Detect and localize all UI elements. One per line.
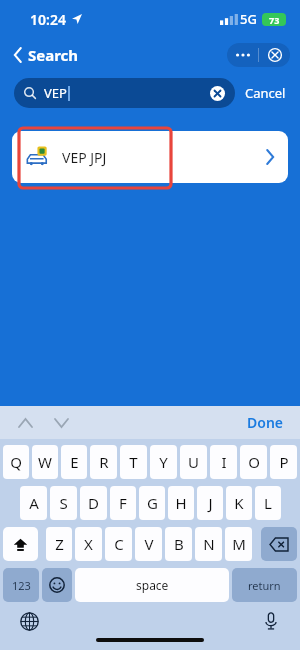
- button[interactable]: Y: [150, 445, 177, 479]
- staticText: Y: [159, 452, 168, 472]
- staticText: K: [234, 493, 244, 513]
- button[interactable]: C: [105, 527, 132, 561]
- staticText: D: [88, 493, 99, 513]
- staticText: Search: [28, 45, 79, 65]
- staticText: J: [208, 493, 213, 513]
- button[interactable]: E: [61, 445, 87, 479]
- button[interactable]: T: [120, 445, 147, 479]
- button[interactable]: Shift: [3, 527, 38, 561]
- button[interactable]: A: [20, 486, 47, 520]
- button[interactable]: P: [270, 445, 297, 479]
- staticText: N: [203, 534, 215, 554]
- button[interactable]: B: [165, 527, 192, 561]
- staticText: B: [174, 534, 184, 554]
- button[interactable]: More options: [227, 43, 258, 67]
- staticText: X: [84, 534, 93, 554]
- staticText: H: [175, 493, 187, 513]
- staticText: P: [279, 452, 289, 472]
- button[interactable]: V: [135, 527, 162, 561]
- button[interactable]: H: [168, 486, 194, 520]
- button[interactable]: U: [180, 445, 207, 479]
- staticText: 123: [12, 578, 31, 593]
- button[interactable]: R: [90, 445, 117, 479]
- staticText: M: [232, 534, 246, 554]
- button[interactable]: Backspace: [261, 527, 297, 561]
- button[interactable]: G: [139, 486, 165, 520]
- button[interactable]: Close: [259, 43, 290, 67]
- staticText: return: [248, 578, 281, 593]
- staticText: 73: [269, 14, 280, 26]
- button[interactable]: O: [240, 445, 267, 479]
- staticText: Q: [10, 452, 22, 472]
- staticText: F: [119, 493, 127, 513]
- button[interactable]: I: [210, 445, 237, 479]
- button[interactable]: Done: [231, 407, 300, 438]
- button[interactable]: D: [80, 486, 107, 520]
- button[interactable]: 123: [3, 568, 39, 602]
- staticText: V: [144, 534, 154, 554]
- button[interactable]: W: [32, 445, 58, 479]
- staticText: T: [129, 452, 138, 472]
- staticText: Done: [247, 413, 284, 432]
- button[interactable]: Q: [3, 445, 29, 479]
- staticText: S: [59, 493, 68, 513]
- button[interactable]: K: [226, 486, 252, 520]
- staticText: U: [188, 452, 199, 472]
- button[interactable]: N: [195, 527, 222, 561]
- button[interactable]: X: [75, 527, 102, 561]
- button[interactable]: VEP: [14, 78, 235, 108]
- staticText: 5G: [240, 10, 257, 28]
- staticText: G: [147, 493, 158, 513]
- button[interactable]: return: [232, 568, 297, 602]
- staticText: W: [38, 452, 52, 472]
- staticText: Cancel: [245, 84, 286, 102]
- button[interactable]: Change keyboard language: [18, 610, 40, 632]
- button[interactable]: Search: [10, 41, 83, 69]
- button[interactable]: Clear text: [209, 85, 225, 101]
- staticText: VEP JPJ: [62, 148, 107, 167]
- staticText: R: [99, 452, 109, 472]
- staticText: VEP: [44, 84, 67, 102]
- button[interactable]: space: [75, 568, 229, 602]
- button[interactable]: Cancel: [235, 80, 288, 106]
- button[interactable]: Voice input: [260, 610, 282, 632]
- staticText: O: [248, 452, 260, 472]
- button[interactable]: S: [50, 486, 77, 520]
- button[interactable]: M: [225, 527, 252, 561]
- button[interactable]: F: [110, 486, 136, 520]
- staticText: L: [264, 493, 272, 513]
- staticText: I: [221, 452, 227, 472]
- staticText: space: [136, 577, 169, 593]
- button[interactable]: L: [255, 486, 281, 520]
- staticText: E: [70, 452, 79, 472]
- staticText: 10:24: [30, 10, 66, 29]
- staticText: Z: [55, 534, 64, 554]
- staticText: C: [114, 534, 124, 554]
- staticText: A: [29, 493, 39, 513]
- button[interactable]: Previous field: [14, 412, 36, 434]
- button[interactable]: Next field: [50, 412, 72, 434]
- button[interactable]: J: [197, 486, 223, 520]
- button[interactable]: VEP JPJ: [12, 131, 288, 183]
- button[interactable]: Emoji: [42, 568, 72, 602]
- button[interactable]: Z: [46, 527, 72, 561]
